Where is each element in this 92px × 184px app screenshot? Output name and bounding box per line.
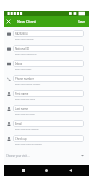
button[interactable]: Inbox (4, 60, 89, 75)
button[interactable]: Recents (19, 166, 28, 175)
staticText: Enter client phone number (15, 83, 41, 86)
staticText: Save (78, 20, 86, 24)
button[interactable]: Close (4, 16, 13, 27)
button[interactable]: Home (42, 166, 51, 175)
staticText: Email (15, 122, 22, 126)
button[interactable]: National ID (4, 45, 89, 60)
staticText: Check up (15, 137, 27, 141)
staticText: Enter client number (15, 38, 34, 41)
staticText: National ID (15, 47, 30, 51)
staticText: Enter valid check up address (15, 143, 42, 146)
staticText: Phone number (15, 77, 34, 81)
staticText: Enter valid first name (15, 98, 36, 101)
staticText: Enter valid last name (15, 113, 35, 116)
staticText: First name (15, 92, 29, 96)
button[interactable]: Choose your visit ... (4, 151, 89, 160)
button[interactable]: First name (4, 90, 89, 105)
staticText: Choose your visit ... (6, 154, 30, 158)
staticText: PA292604 (15, 32, 28, 36)
staticText: Enter client national ID (15, 53, 37, 56)
button[interactable]: Last name (4, 105, 89, 120)
button[interactable]: Back (66, 166, 75, 175)
button[interactable]: Email (4, 120, 89, 135)
button[interactable]: Check up (4, 135, 89, 150)
button[interactable]: PA292604 (4, 30, 89, 45)
staticText: Inbox (15, 62, 23, 66)
button[interactable]: Phone number (4, 75, 89, 90)
staticText: Last name (15, 107, 29, 111)
staticText: Enter client inbox (15, 68, 32, 71)
staticText: Enter valid email address (15, 128, 39, 131)
staticText: New Client (17, 19, 37, 24)
button[interactable]: Save (78, 20, 86, 24)
